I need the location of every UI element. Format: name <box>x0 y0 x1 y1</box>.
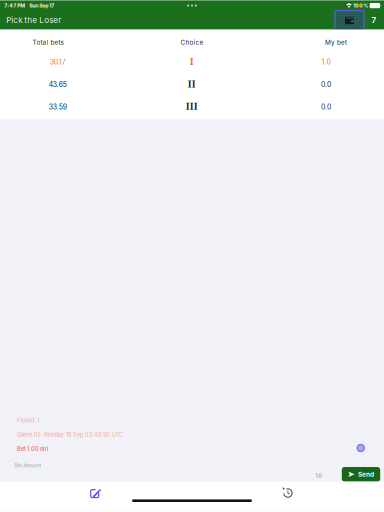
staticText: Bet Amount <box>14 462 41 468</box>
staticText: Pick the Loser <box>6 15 61 25</box>
staticText: Game ID: Monday 18 Sep 02:46:50 UTC <box>17 431 123 438</box>
staticText: Choice <box>180 38 203 46</box>
staticText: Sun Sep 17 <box>29 2 54 9</box>
button[interactable]: Wallet <box>335 11 364 30</box>
staticText: Send <box>358 470 374 478</box>
staticText: III <box>186 102 198 112</box>
staticText: 1.0 <box>316 472 322 479</box>
staticText: 100% <box>353 2 368 9</box>
staticText: 7:47 PM <box>4 2 25 9</box>
staticText: II <box>188 80 196 89</box>
staticText: 33.59 <box>49 103 67 111</box>
button[interactable]: Send <box>342 467 380 482</box>
staticText: Total bets <box>32 38 63 46</box>
staticText: Bet 1.00 on I <box>17 445 49 452</box>
staticText: 0.0 <box>321 103 331 111</box>
staticText: 43.65 <box>49 80 67 89</box>
staticText: Picked: I <box>17 417 40 424</box>
button[interactable]: Compose <box>70 481 122 505</box>
staticText: 7 <box>371 15 376 25</box>
button[interactable]: History <box>261 481 313 505</box>
staticText: My bet <box>325 38 347 46</box>
staticText: 30.17 <box>50 58 66 66</box>
staticText: 1.0 <box>321 58 330 66</box>
button[interactable]: Balance, 7 <box>364 11 384 30</box>
staticText: 0.0 <box>321 80 331 89</box>
staticText: I <box>190 57 194 67</box>
